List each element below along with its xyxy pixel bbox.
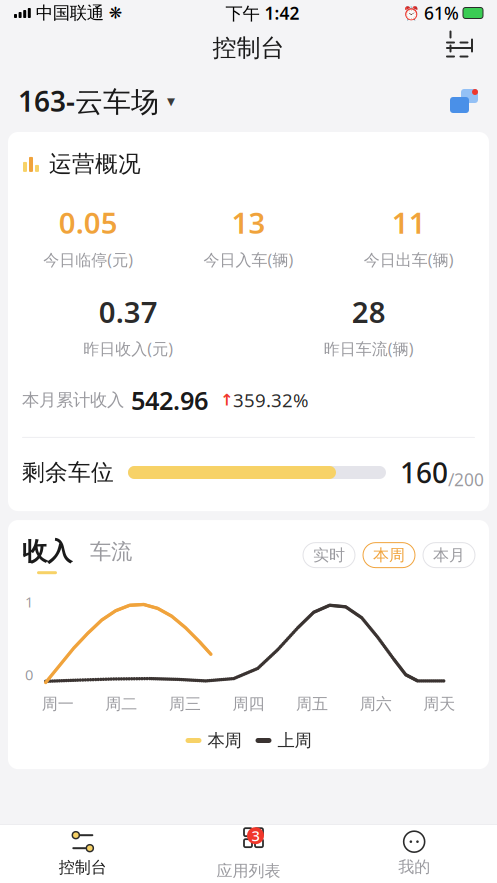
- staticText: 周天: [423, 694, 455, 714]
- staticText: 359.32%: [233, 388, 309, 412]
- staticText: 今日入车(辆): [203, 249, 293, 270]
- staticText: 0: [25, 665, 33, 684]
- staticText: 本月累计收入: [22, 389, 124, 411]
- staticText: 昨日车流(辆): [324, 338, 414, 359]
- staticText: 我的: [398, 857, 430, 877]
- button[interactable]: 3: [166, 821, 331, 883]
- staticText: ⏰: [403, 5, 420, 21]
- button[interactable]: 实时: [303, 543, 355, 568]
- staticText: ↑: [208, 391, 233, 409]
- button[interactable]: 收入: [22, 536, 72, 574]
- staticText: 周一: [42, 694, 74, 714]
- staticText: 0.37: [99, 292, 158, 331]
- staticText: 周六: [360, 694, 392, 714]
- staticText: 周三: [169, 694, 201, 714]
- button[interactable]: 本月: [423, 543, 475, 568]
- button[interactable]: 车流: [72, 538, 132, 572]
- staticText: 周四: [232, 694, 264, 714]
- staticText: 1: [25, 592, 33, 612]
- staticText: 控制台: [212, 33, 284, 63]
- staticText: 542.96: [124, 383, 208, 417]
- button[interactable]: 控制台: [0, 825, 166, 883]
- staticText: 今日临停(元): [43, 249, 133, 270]
- staticText: 0.05: [59, 203, 118, 242]
- staticText: 3: [251, 826, 259, 845]
- staticText: 剩余车位: [22, 459, 114, 486]
- staticText: 今日出车(辆): [364, 249, 454, 270]
- staticText: 中国联通: [36, 2, 104, 24]
- staticText: 收入: [22, 536, 72, 567]
- staticText: 13: [231, 203, 265, 242]
- staticText: 昨日收入(元): [83, 338, 173, 359]
- staticText: 周二: [105, 694, 137, 714]
- staticText: 下午 1:42: [225, 1, 299, 24]
- staticText: 本周: [207, 730, 241, 751]
- staticText: ❋: [109, 4, 122, 22]
- button[interactable]: 我的: [331, 825, 497, 883]
- button[interactable]: 163-云车场: [18, 82, 175, 120]
- staticText: 运营概况: [49, 150, 141, 178]
- staticText: 控制台: [59, 858, 107, 877]
- button[interactable]: 消息: [449, 88, 479, 114]
- staticText: 160: [400, 454, 448, 491]
- staticText: 本周: [373, 545, 405, 565]
- staticText: 周五: [296, 694, 328, 714]
- staticText: 实时: [313, 545, 345, 565]
- staticText: /200: [448, 468, 484, 491]
- staticText: 车流: [90, 538, 132, 565]
- staticText: 本月: [433, 545, 465, 565]
- staticText: 61%: [424, 1, 459, 24]
- staticText: 应用列表: [216, 861, 280, 881]
- staticText: 上周: [277, 730, 311, 751]
- staticText: ▾: [167, 92, 175, 110]
- button[interactable]: 扫一扫: [436, 30, 483, 66]
- staticText: 11: [392, 203, 426, 242]
- staticText: 28: [352, 292, 386, 331]
- button[interactable]: 本周: [363, 543, 415, 568]
- staticText: 163-云车场: [18, 82, 159, 120]
